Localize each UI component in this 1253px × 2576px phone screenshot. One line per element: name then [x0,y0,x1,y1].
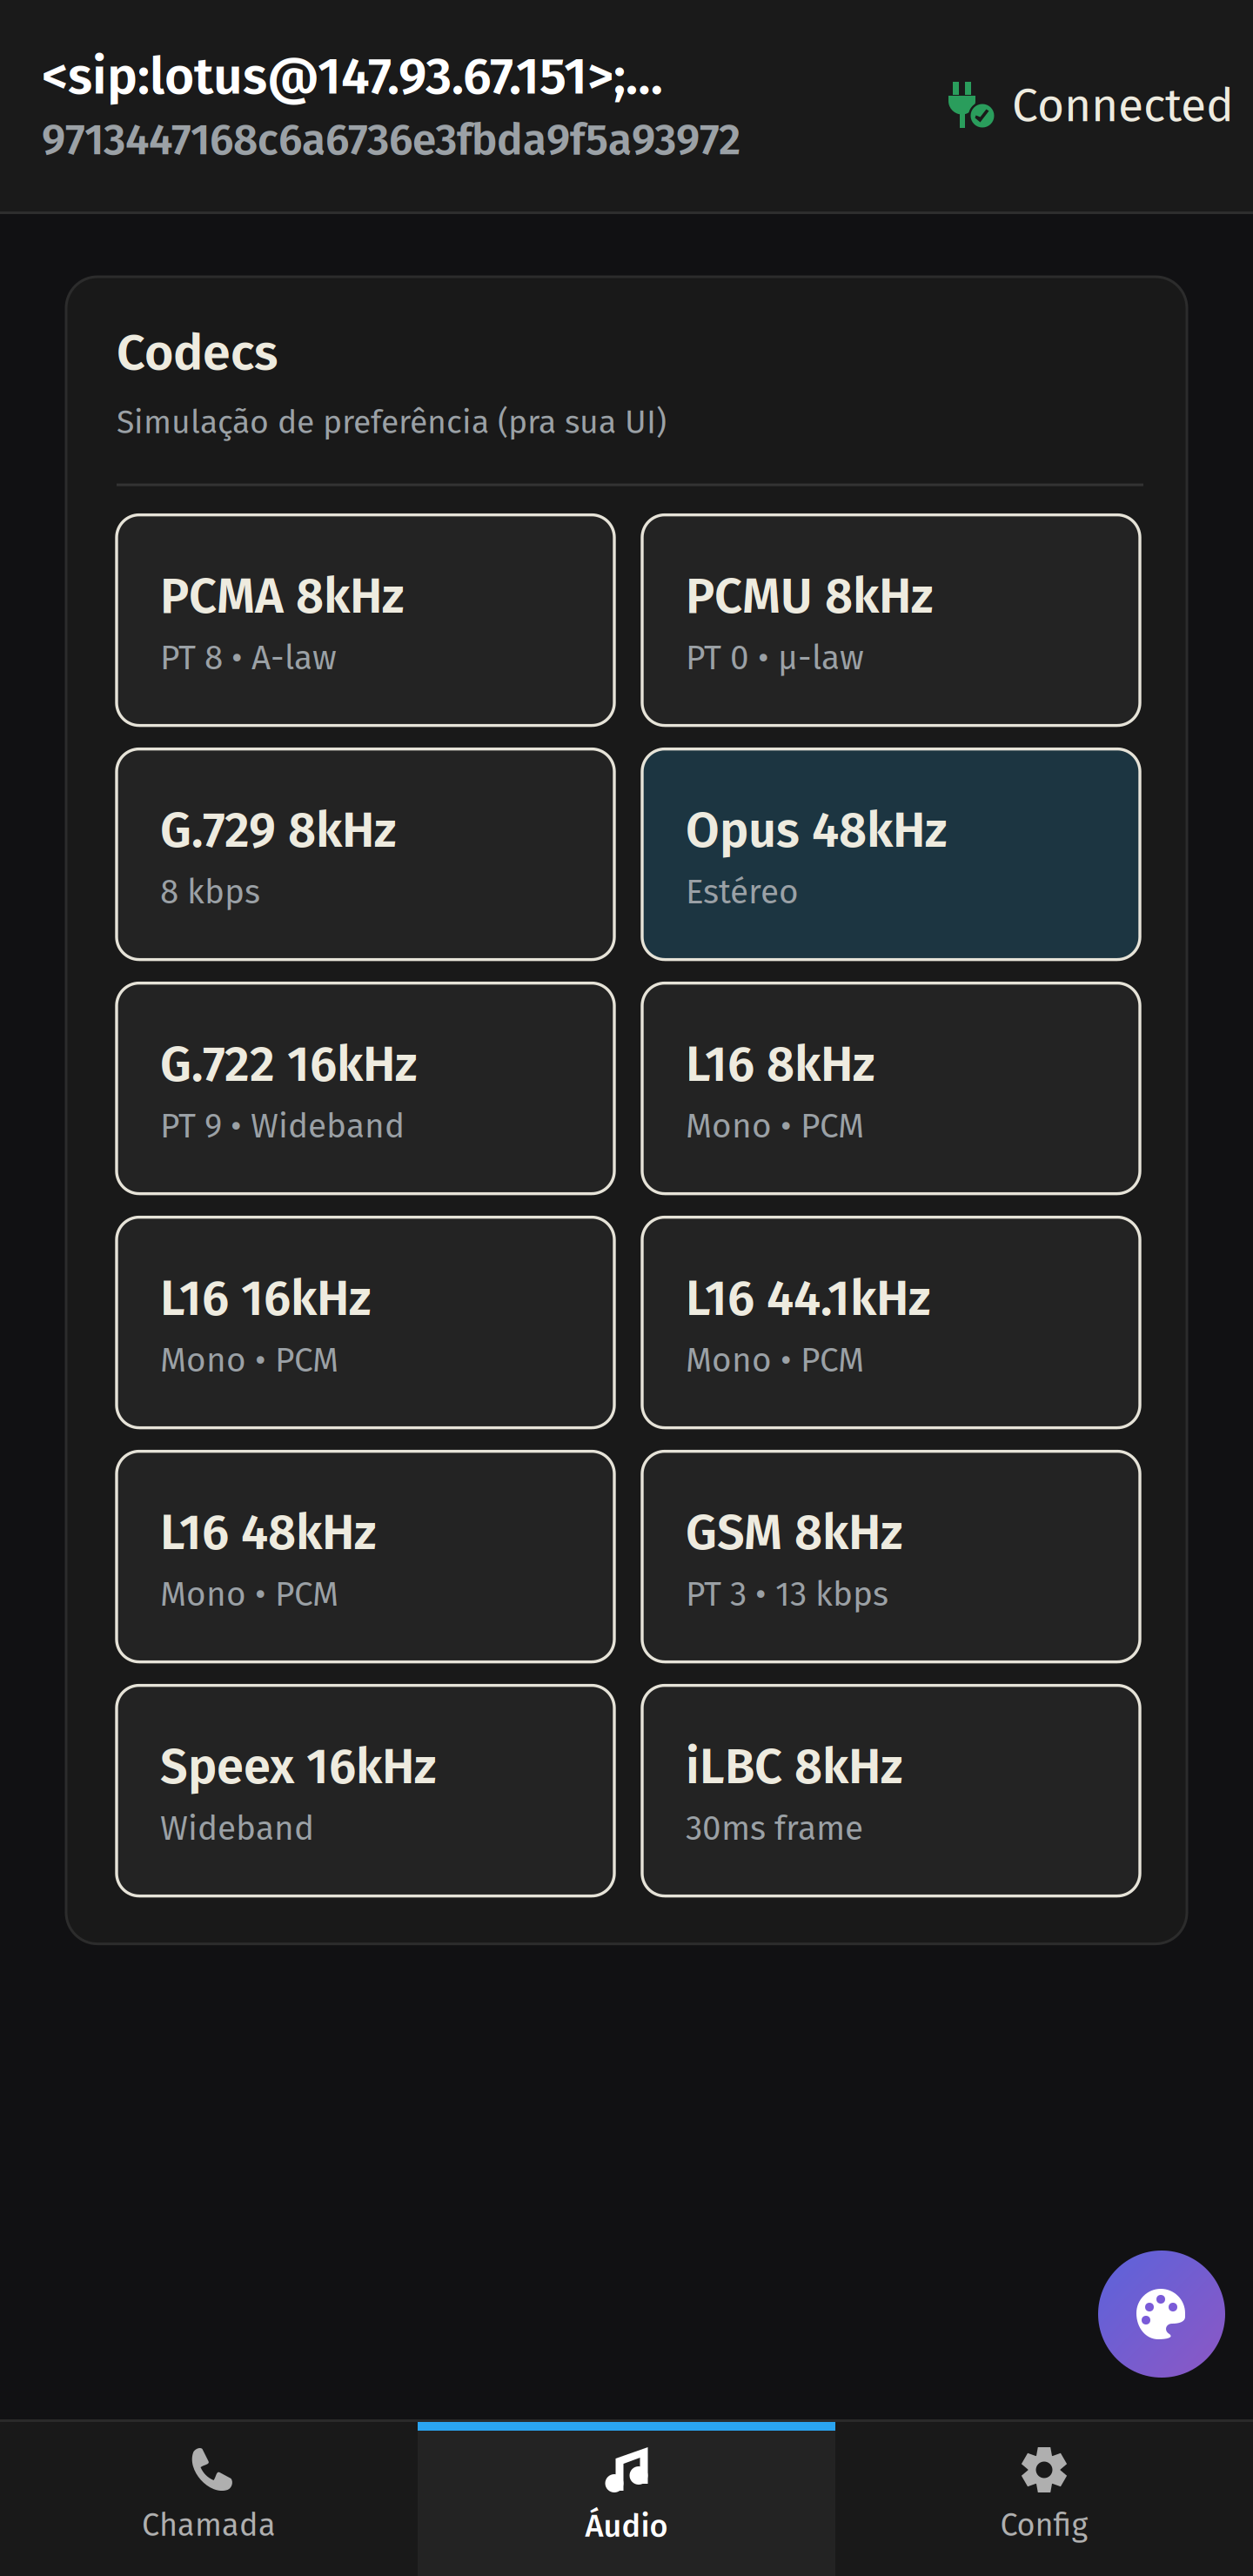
staticText: Wideband [160,1808,314,1849]
button[interactable]: PCMA 8kHz [117,515,614,725]
staticText: 9713447168c6a6736e3fbda9f5a93972 [42,114,740,166]
staticText: GSM 8kHz [686,1503,902,1562]
button[interactable]: G.722 16kHz [117,983,614,1194]
staticText: 30ms frame [686,1808,863,1849]
staticText: Mono • PCM [160,1340,338,1380]
staticText: Mono • PCM [160,1574,338,1615]
staticText: Config [1000,2506,1088,2544]
button[interactable]: G.729 8kHz [117,749,614,960]
button[interactable]: Áudio [418,2422,835,2576]
button[interactable]: L16 48kHz [117,1451,614,1662]
staticText: PCMA 8kHz [160,567,404,626]
button[interactable]: Speex 16kHz [117,1685,614,1896]
staticText: PT 0 • µ-law [686,638,864,678]
staticText: L16 48kHz [160,1503,376,1562]
staticText: PT 3 • 13 kbps [686,1574,888,1615]
staticText: <sip:lotus@147.93.67.151>;… [42,46,663,107]
staticText: L16 44.1kHz [686,1269,930,1328]
button[interactable]: iLBC 8kHz [642,1685,1140,1896]
staticText: iLBC 8kHz [686,1738,902,1796]
staticText: PT 9 • Wideband [160,1106,405,1146]
button[interactable]: Config [835,2422,1253,2576]
staticText: G.722 16kHz [160,1035,417,1094]
staticText: Simulação de preferência (pra sua UI) [117,403,667,442]
staticText: Opus 48kHz [686,801,947,860]
button[interactable]: GSM 8kHz [642,1451,1140,1662]
staticText: 8 kbps [160,872,260,912]
staticText: G.729 8kHz [160,801,396,860]
staticText: PT 8 • A-law [160,638,337,678]
staticText: Codecs [117,323,278,383]
staticText: Chamada [142,2506,276,2544]
staticText: Áudio [585,2507,668,2545]
button[interactable]: L16 44.1kHz [642,1217,1140,1428]
staticText: Estéreo [686,872,799,912]
button[interactable]: L16 8kHz [642,983,1140,1194]
staticText: Mono • PCM [686,1340,864,1380]
staticText: Connected [1012,78,1234,134]
staticText: Speex 16kHz [160,1738,436,1796]
button[interactable]: Opus 48kHz [642,749,1140,960]
button[interactable]: Chamada [0,2422,418,2576]
button[interactable]: PCMU 8kHz [642,515,1140,725]
staticText: L16 8kHz [686,1035,874,1094]
staticText: L16 16kHz [160,1269,371,1328]
button[interactable]: Change theme [1098,2251,1225,2378]
button[interactable]: L16 16kHz [117,1217,614,1428]
staticText: Mono • PCM [686,1106,864,1146]
staticText: PCMU 8kHz [686,567,933,626]
